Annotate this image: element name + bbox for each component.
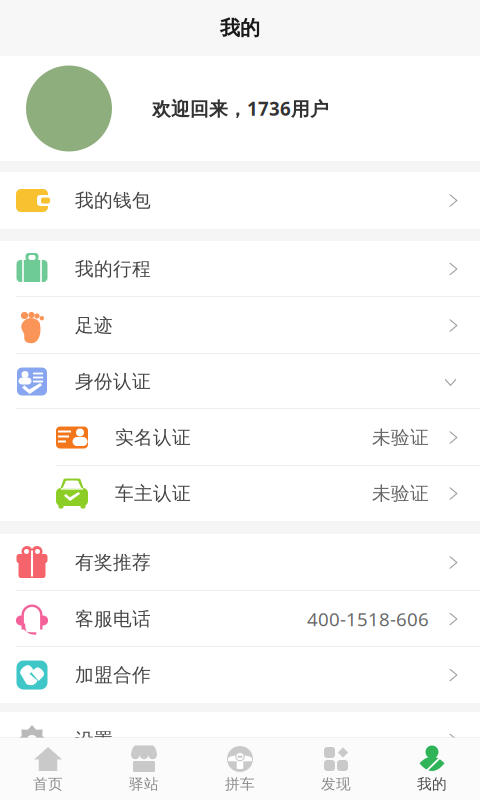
staticText: 车主认证 xyxy=(115,482,191,505)
button[interactable]: 实名认证 xyxy=(0,409,480,466)
staticText: 首页 xyxy=(33,775,63,793)
staticText: 我的 xyxy=(220,16,260,40)
button[interactable]: 足迹 xyxy=(0,297,480,354)
staticText: 未验证 xyxy=(372,482,429,505)
staticText: 未验证 xyxy=(372,426,429,449)
button[interactable]: 欢迎回来，1736用户 xyxy=(0,56,480,161)
button[interactable]: 设置 xyxy=(0,712,480,768)
staticText: 设置 xyxy=(75,728,113,751)
button[interactable]: 我的钱包 xyxy=(0,172,480,229)
button[interactable]: 我的行程 xyxy=(0,241,480,297)
button[interactable]: 加盟合作 xyxy=(0,647,480,703)
staticText: 拼车 xyxy=(225,775,255,793)
button[interactable]: 身份认证 xyxy=(0,354,480,409)
staticText: 客服电话 xyxy=(75,607,151,630)
staticText: 欢迎回来，1736用户 xyxy=(152,96,329,121)
staticText: 400-1518-606 xyxy=(307,607,429,631)
button[interactable]: 发现 xyxy=(288,738,384,800)
button[interactable]: 首页 xyxy=(0,738,96,800)
button[interactable]: 我的 xyxy=(384,738,480,800)
staticText: 足迹 xyxy=(75,314,113,337)
staticText: 有奖推荐 xyxy=(75,551,151,574)
button[interactable]: 车主认证 xyxy=(0,466,480,521)
button[interactable]: 客服电话 xyxy=(0,591,480,647)
button[interactable]: 拼车 xyxy=(192,738,288,800)
staticText: 加盟合作 xyxy=(75,663,151,686)
staticText: 发现 xyxy=(321,775,351,793)
button[interactable]: 驿站 xyxy=(96,738,192,800)
staticText: 身份认证 xyxy=(75,370,151,393)
staticText: 我的 xyxy=(417,775,447,793)
staticText: 我的行程 xyxy=(75,257,151,280)
button[interactable]: 有奖推荐 xyxy=(0,534,480,591)
staticText: 实名认证 xyxy=(115,426,191,449)
staticText: 驿站 xyxy=(129,775,159,793)
staticText: 我的钱包 xyxy=(75,189,151,212)
